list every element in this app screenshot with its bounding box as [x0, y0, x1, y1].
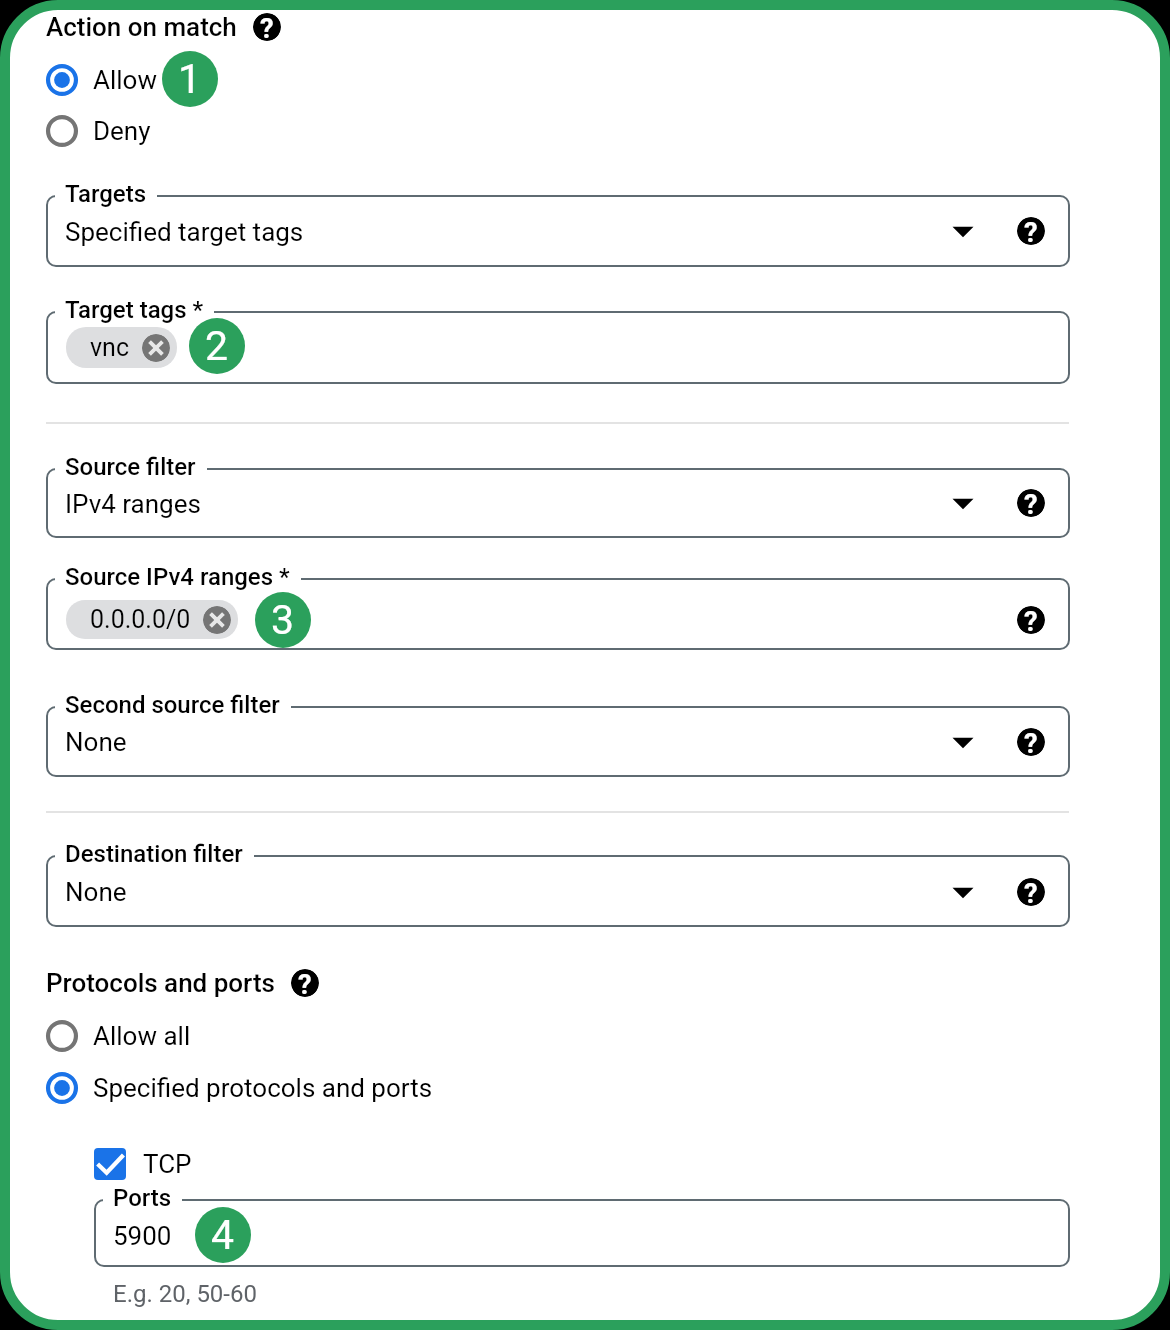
button[interactable]: Step 4	[195, 1207, 251, 1263]
button[interactable]: Step 3	[255, 592, 311, 648]
staticText: 1	[178, 55, 202, 103]
button[interactable]: Help	[253, 13, 281, 41]
staticText: ?	[1024, 878, 1038, 906]
staticText: Ports	[113, 1184, 172, 1212]
staticText: ?	[1024, 728, 1038, 756]
button[interactable]	[46, 855, 1070, 927]
button[interactable]: Help	[1017, 728, 1045, 756]
button[interactable]	[46, 578, 1070, 650]
button[interactable]: Deny	[45, 109, 151, 153]
button[interactable]: Step 2	[189, 318, 245, 374]
button[interactable]: Allow all	[45, 1014, 191, 1058]
staticText: Action on match	[46, 12, 237, 42]
staticText: Targets	[65, 180, 147, 208]
button[interactable]	[46, 311, 1070, 384]
button[interactable]: Help	[1017, 606, 1045, 634]
staticText: Allow	[93, 65, 157, 95]
staticText: vnc	[90, 333, 130, 362]
staticText: IPv4 ranges	[65, 489, 201, 519]
staticText: ?	[1024, 217, 1038, 245]
staticText: ?	[260, 13, 274, 41]
staticText: None	[65, 877, 127, 907]
staticText: E.g. 20, 50-60	[113, 1280, 257, 1308]
staticText: Destination filter	[65, 840, 243, 868]
staticText: 4	[211, 1211, 235, 1259]
staticText: Specified target tags	[65, 217, 304, 247]
staticText: 5900	[113, 1221, 172, 1251]
staticText: Protocols and ports	[46, 968, 275, 998]
button[interactable]: Help	[1017, 217, 1045, 245]
staticText: Source filter	[65, 453, 196, 481]
button[interactable]: Allow	[45, 58, 157, 102]
button[interactable]: Open dropdown	[947, 878, 979, 908]
button[interactable]: TCP	[94, 1142, 192, 1186]
staticText: Second source filter	[65, 691, 280, 719]
staticText: 0.0.0.0/0	[90, 605, 191, 634]
button[interactable]	[46, 468, 1070, 538]
button[interactable]: Open dropdown	[947, 489, 979, 519]
staticText: Deny	[93, 116, 151, 146]
button[interactable]: Help	[291, 969, 319, 997]
button[interactable]: Open dropdown	[947, 728, 979, 758]
staticText: Target tags *	[65, 296, 204, 324]
button[interactable]: Step 1	[162, 51, 218, 107]
button[interactable]: Specified protocols and ports	[45, 1066, 433, 1110]
staticText: TCP	[143, 1149, 192, 1179]
button[interactable]	[46, 706, 1070, 777]
button[interactable]: 0.0.0.0/0	[66, 600, 238, 639]
staticText: Specified protocols and ports	[93, 1073, 433, 1103]
staticText: 2	[205, 322, 229, 370]
staticText: ?	[1024, 489, 1038, 517]
button[interactable]: Remove 0.0.0.0/0	[203, 606, 231, 634]
button[interactable]: Remove vnc	[142, 334, 170, 362]
button[interactable]: Help	[1017, 878, 1045, 906]
staticText: Source IPv4 ranges *	[65, 563, 290, 591]
button[interactable]: Help	[1017, 489, 1045, 517]
button[interactable]: Open dropdown	[947, 217, 979, 247]
staticText: 3	[271, 596, 295, 644]
staticText: None	[65, 727, 127, 757]
staticText: Allow all	[93, 1021, 191, 1051]
button[interactable]: vnc	[66, 327, 177, 368]
staticText: ?	[298, 969, 312, 997]
button[interactable]	[46, 195, 1070, 267]
staticText: ?	[1024, 606, 1038, 634]
button[interactable]	[94, 1199, 1070, 1267]
